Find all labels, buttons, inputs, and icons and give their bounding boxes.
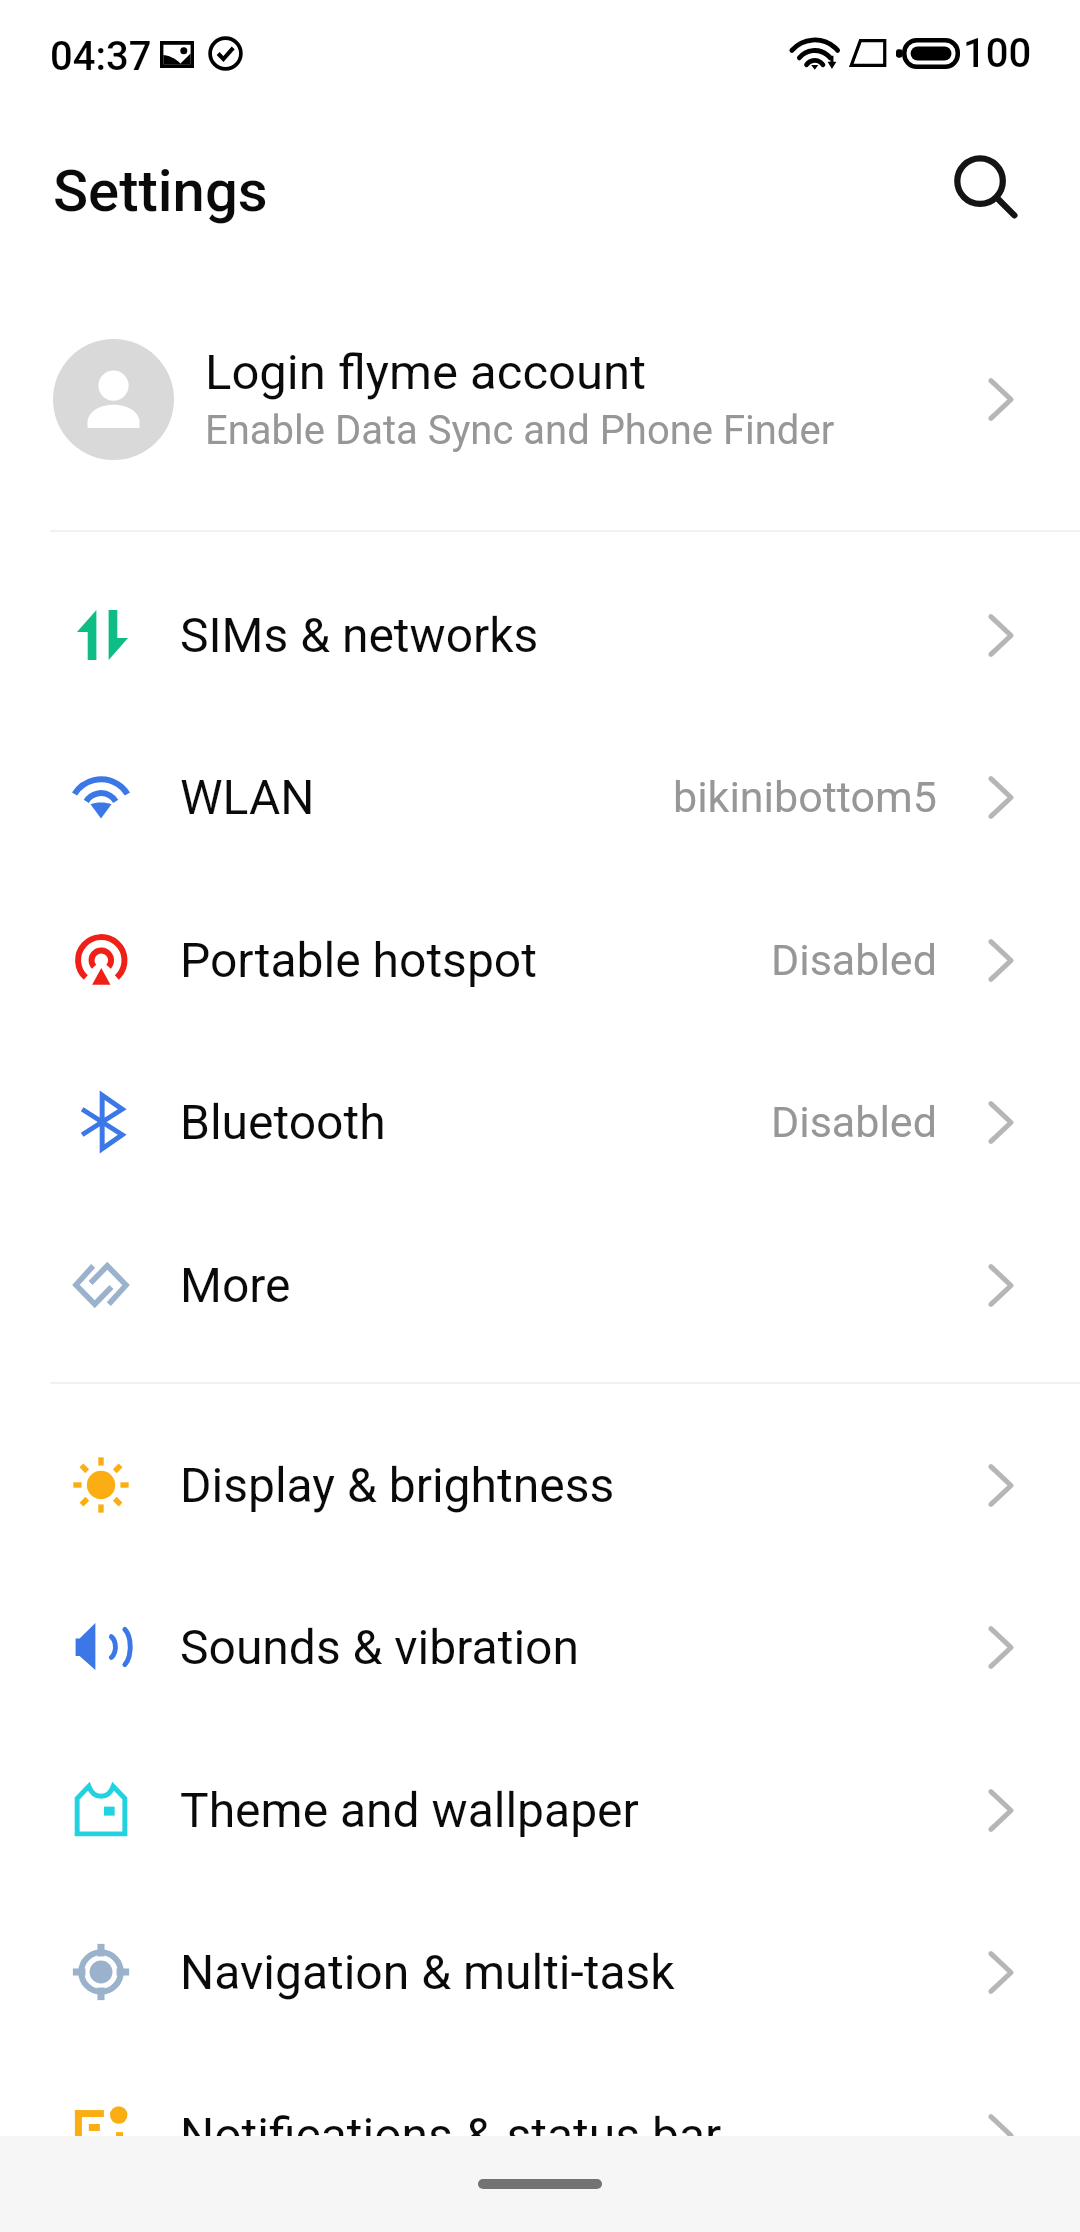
button[interactable]: Notifications & status bar — [0, 2054, 1080, 2216]
staticText: WLAN — [180, 769, 315, 825]
button[interactable]: SIMs & networks — [0, 554, 1080, 716]
staticText: Disabled — [771, 935, 937, 985]
button[interactable]: Bluetooth — [0, 1041, 1080, 1203]
staticText: Login flyme account — [205, 344, 647, 401]
staticText: 04:37 — [50, 33, 152, 80]
button[interactable]: Display & brightness — [0, 1404, 1080, 1566]
button[interactable]: Login flyme account — [0, 290, 1080, 508]
button[interactable]: Search — [930, 131, 1042, 243]
staticText: Navigation & multi-task — [180, 1944, 675, 2000]
button[interactable]: Navigation & multi-task — [0, 1891, 1080, 2053]
staticText: More — [180, 1257, 291, 1313]
staticText: Disabled — [771, 1097, 937, 1147]
button[interactable]: Theme and wallpaper — [0, 1729, 1080, 1891]
button[interactable]: Sounds & vibration — [0, 1566, 1080, 1728]
staticText: 100 — [963, 30, 1032, 77]
staticText: Notifications & status bar — [180, 2107, 722, 2163]
staticText: Bluetooth — [180, 1094, 386, 1150]
button[interactable]: WLAN — [0, 716, 1080, 878]
staticText: Portable hotspot — [180, 932, 537, 988]
button[interactable]: Settings — [53, 157, 268, 225]
staticText: Enable Data Sync and Phone Finder — [205, 407, 835, 454]
staticText: bikinibottom5 — [673, 772, 937, 822]
button[interactable]: More — [0, 1204, 1080, 1366]
staticText: Sounds & vibration — [180, 1619, 579, 1675]
button[interactable]: Portable hotspot — [0, 879, 1080, 1041]
staticText: Theme and wallpaper — [180, 1782, 639, 1838]
staticText: SIMs & networks — [180, 607, 539, 663]
staticText: Display & brightness — [180, 1457, 615, 1513]
